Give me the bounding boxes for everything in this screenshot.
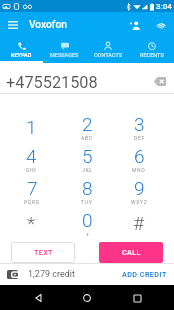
staticText: 5: [82, 145, 93, 167]
staticText: PQRS: [24, 199, 40, 205]
button[interactable]: MESSAGES: [43, 38, 86, 63]
button[interactable]: Home: [75, 286, 99, 310]
staticText: 9: [134, 177, 145, 199]
staticText: TUV: [81, 199, 93, 205]
staticText: TEXT: [34, 248, 53, 257]
button[interactable]: 7: [0, 175, 63, 207]
button[interactable]: 8: [63, 175, 111, 207]
staticText: 3:04: [156, 2, 172, 11]
staticText: 1: [26, 116, 37, 138]
staticText: *: [27, 212, 36, 234]
button[interactable]: 4: [0, 143, 63, 175]
button[interactable]: 9: [111, 175, 167, 207]
button[interactable]: 1: [0, 111, 63, 143]
button[interactable]: 6: [111, 143, 167, 175]
staticText: ABC: [81, 135, 93, 141]
staticText: KEYPAD: [11, 52, 32, 58]
button[interactable]: Recent apps: [125, 286, 149, 310]
staticText: RECENTS: [140, 52, 164, 58]
button[interactable]: ADD CREDIT: [115, 265, 174, 283]
staticText: 3: [134, 113, 145, 135]
button[interactable]: 0: [63, 207, 111, 239]
staticText: CONTACTS: [94, 52, 123, 58]
staticText: #: [133, 212, 145, 234]
staticText: +475521508: [6, 73, 98, 92]
staticText: CALL: [122, 248, 141, 257]
staticText: 8: [82, 177, 93, 199]
button[interactable]: 3: [111, 111, 167, 143]
staticText: MNO: [132, 167, 146, 173]
staticText: 4: [26, 145, 37, 167]
button[interactable]: CALL: [99, 242, 163, 263]
button[interactable]: Add contact: [122, 12, 148, 38]
button[interactable]: Backspace: [149, 70, 171, 92]
button[interactable]: Back: [26, 286, 50, 310]
staticText: 6: [134, 145, 145, 167]
staticText: ADD CREDIT: [122, 270, 167, 278]
button[interactable]: #: [111, 207, 167, 239]
staticText: 1,279 credit: [28, 269, 75, 280]
button[interactable]: *: [0, 207, 63, 239]
staticText: MESSAGES: [50, 52, 79, 58]
button[interactable]: 5: [63, 143, 111, 175]
button[interactable]: KEYPAD: [0, 38, 43, 63]
staticText: +: [86, 231, 90, 237]
button[interactable]: RECENTS: [130, 38, 174, 63]
staticText: 2: [82, 113, 93, 135]
staticText: 7: [27, 177, 38, 199]
staticText: Voxofon: [29, 19, 67, 31]
button[interactable]: Open navigation menu: [0, 12, 26, 38]
staticText: GHI: [26, 167, 37, 173]
button[interactable]: Wifi calling: [148, 12, 174, 38]
button[interactable]: CONTACTS: [86, 38, 130, 63]
button[interactable]: TEXT: [11, 242, 75, 263]
staticText: JKL: [82, 167, 93, 173]
staticText: DEF: [134, 135, 145, 141]
button[interactable]: 2: [63, 111, 111, 143]
staticText: 0: [82, 209, 93, 231]
staticText: WXYZ: [131, 199, 148, 205]
